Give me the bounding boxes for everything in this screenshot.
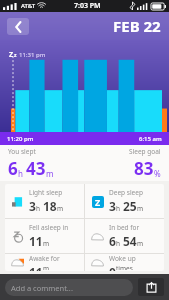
staticText: Z (95, 196, 101, 208)
button[interactable]: Awake for (5, 254, 84, 271)
staticText: You slept (8, 147, 36, 156)
staticText: 43 (26, 157, 46, 180)
staticText: FEB 22 (113, 16, 161, 36)
staticText: Light sleep (29, 188, 63, 197)
staticText: Sleep goal (129, 147, 161, 156)
staticText: times (116, 264, 133, 270)
button[interactable]: You slept (0, 145, 169, 181)
staticText: 6:15 am (139, 135, 162, 143)
staticText: 7:03 PM (74, 1, 101, 11)
button[interactable]: Z (85, 184, 164, 218)
staticText: m (137, 239, 144, 248)
staticText: 6 (109, 233, 116, 249)
staticText: % (154, 168, 161, 179)
staticText: h (116, 204, 121, 213)
staticText: Deep sleep (109, 188, 143, 197)
button[interactable]: Share (138, 278, 164, 296)
staticText: 3 (109, 198, 116, 214)
staticText: AT&T (21, 2, 36, 10)
staticText: m (43, 264, 50, 270)
staticText: h (36, 204, 41, 213)
staticText: 83 (134, 157, 154, 180)
staticText: In bed for (109, 223, 140, 232)
staticText: h (116, 239, 121, 248)
button[interactable]: Light sleep (5, 184, 84, 218)
staticText: h (18, 168, 23, 179)
button[interactable]: Add a comment... (5, 279, 133, 296)
staticText: 0 (109, 264, 116, 271)
staticText: m (46, 168, 54, 179)
staticText: Add a comment... (11, 283, 73, 293)
staticText: 6 (8, 157, 18, 180)
staticText: 18 (43, 198, 57, 214)
staticText: 3 (29, 198, 36, 214)
staticText: Awake for (29, 254, 60, 263)
staticText: 54 (123, 233, 137, 249)
staticText: 11 (29, 233, 43, 249)
staticText: m (137, 204, 144, 213)
staticText: 11 (29, 264, 43, 271)
button[interactable]: Back (7, 18, 29, 35)
staticText: Z (9, 50, 14, 60)
staticText: m (43, 239, 50, 248)
button[interactable]: Fell asleep in (5, 219, 84, 253)
staticText: z (14, 52, 17, 59)
staticText: 11:31 pm (19, 51, 46, 59)
staticText: Woke up (109, 254, 136, 263)
staticText: 11:20 pm (7, 135, 34, 143)
staticText: m (57, 204, 64, 213)
staticText: Fell asleep in (29, 223, 69, 232)
button[interactable]: Woke up (85, 254, 164, 271)
button[interactable]: In bed for (85, 219, 164, 253)
staticText: 25 (123, 198, 137, 214)
